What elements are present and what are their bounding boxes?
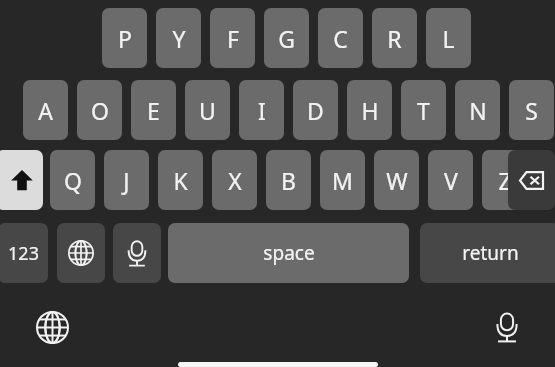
- staticText: G: [278, 23, 295, 54]
- staticText: B: [281, 165, 296, 196]
- button[interactable]: N: [455, 80, 500, 140]
- staticText: M: [332, 165, 353, 196]
- staticText: A: [38, 95, 53, 126]
- staticText: J: [123, 165, 130, 196]
- button[interactable]: X: [212, 150, 257, 210]
- button[interactable]: O: [77, 80, 122, 140]
- button[interactable]: F: [210, 8, 255, 68]
- button[interactable]: D: [293, 80, 338, 140]
- staticText: Q: [64, 165, 82, 196]
- staticText: space: [263, 240, 315, 266]
- button[interactable]: Switch keyboard language: [57, 223, 105, 283]
- button[interactable]: M: [320, 150, 365, 210]
- staticText: E: [147, 95, 160, 126]
- button[interactable]: A: [23, 80, 68, 140]
- staticText: 123: [8, 241, 39, 266]
- button[interactable]: G: [264, 8, 309, 68]
- button[interactable]: P: [102, 8, 147, 68]
- button[interactable]: 123: [0, 223, 48, 283]
- staticText: N: [469, 95, 487, 126]
- button[interactable]: R: [372, 8, 417, 68]
- button[interactable]: space: [168, 223, 409, 283]
- button[interactable]: Change language: [30, 305, 74, 349]
- button[interactable]: Z: [482, 150, 527, 210]
- staticText: V: [444, 165, 458, 196]
- staticText: K: [173, 165, 188, 196]
- staticText: F: [227, 23, 239, 54]
- staticText: W: [386, 165, 408, 196]
- staticText: I: [258, 95, 266, 126]
- staticText: S: [525, 95, 538, 126]
- staticText: T: [417, 95, 430, 126]
- button[interactable]: H: [347, 80, 392, 140]
- staticText: return: [462, 240, 519, 266]
- staticText: Z: [498, 165, 512, 196]
- staticText: Y: [172, 23, 186, 54]
- button[interactable]: T: [401, 80, 446, 140]
- staticText: H: [361, 95, 379, 126]
- button[interactable]: J: [104, 150, 149, 210]
- button[interactable]: L: [426, 8, 471, 68]
- button[interactable]: return: [420, 223, 555, 283]
- button[interactable]: B: [266, 150, 311, 210]
- button[interactable]: Q: [50, 150, 95, 210]
- staticText: L: [442, 23, 455, 54]
- button[interactable]: S: [509, 80, 554, 140]
- button[interactable]: I: [239, 80, 284, 140]
- button[interactable]: Y: [156, 8, 201, 68]
- button[interactable]: E: [131, 80, 176, 140]
- button[interactable]: Shift: [0, 150, 43, 210]
- button[interactable]: Dictation: [485, 305, 529, 349]
- staticText: X: [228, 165, 242, 196]
- staticText: U: [199, 95, 216, 126]
- staticText: P: [118, 23, 132, 54]
- button[interactable]: C: [318, 8, 363, 68]
- staticText: C: [333, 23, 348, 54]
- staticText: R: [387, 23, 402, 54]
- staticText: O: [91, 95, 109, 126]
- button[interactable]: Voice input: [113, 223, 161, 283]
- button[interactable]: U: [185, 80, 230, 140]
- button[interactable]: K: [158, 150, 203, 210]
- button[interactable]: W: [374, 150, 419, 210]
- button[interactable]: Backspace: [508, 150, 555, 210]
- staticText: D: [307, 95, 324, 126]
- button[interactable]: V: [428, 150, 473, 210]
